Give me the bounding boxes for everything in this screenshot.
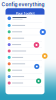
button[interactable] (5, 54, 44, 61)
button[interactable] (5, 61, 44, 67)
button[interactable] (5, 42, 44, 48)
button[interactable] (5, 22, 44, 29)
button[interactable] (5, 35, 44, 42)
button[interactable] (5, 67, 44, 74)
button[interactable] (5, 80, 44, 86)
button[interactable] (5, 15, 44, 22)
staticText: Your Toolkit (15, 11, 34, 16)
staticText: Config everything (1, 1, 44, 7)
button[interactable] (5, 74, 44, 80)
button[interactable] (5, 29, 44, 35)
button[interactable] (5, 48, 44, 54)
